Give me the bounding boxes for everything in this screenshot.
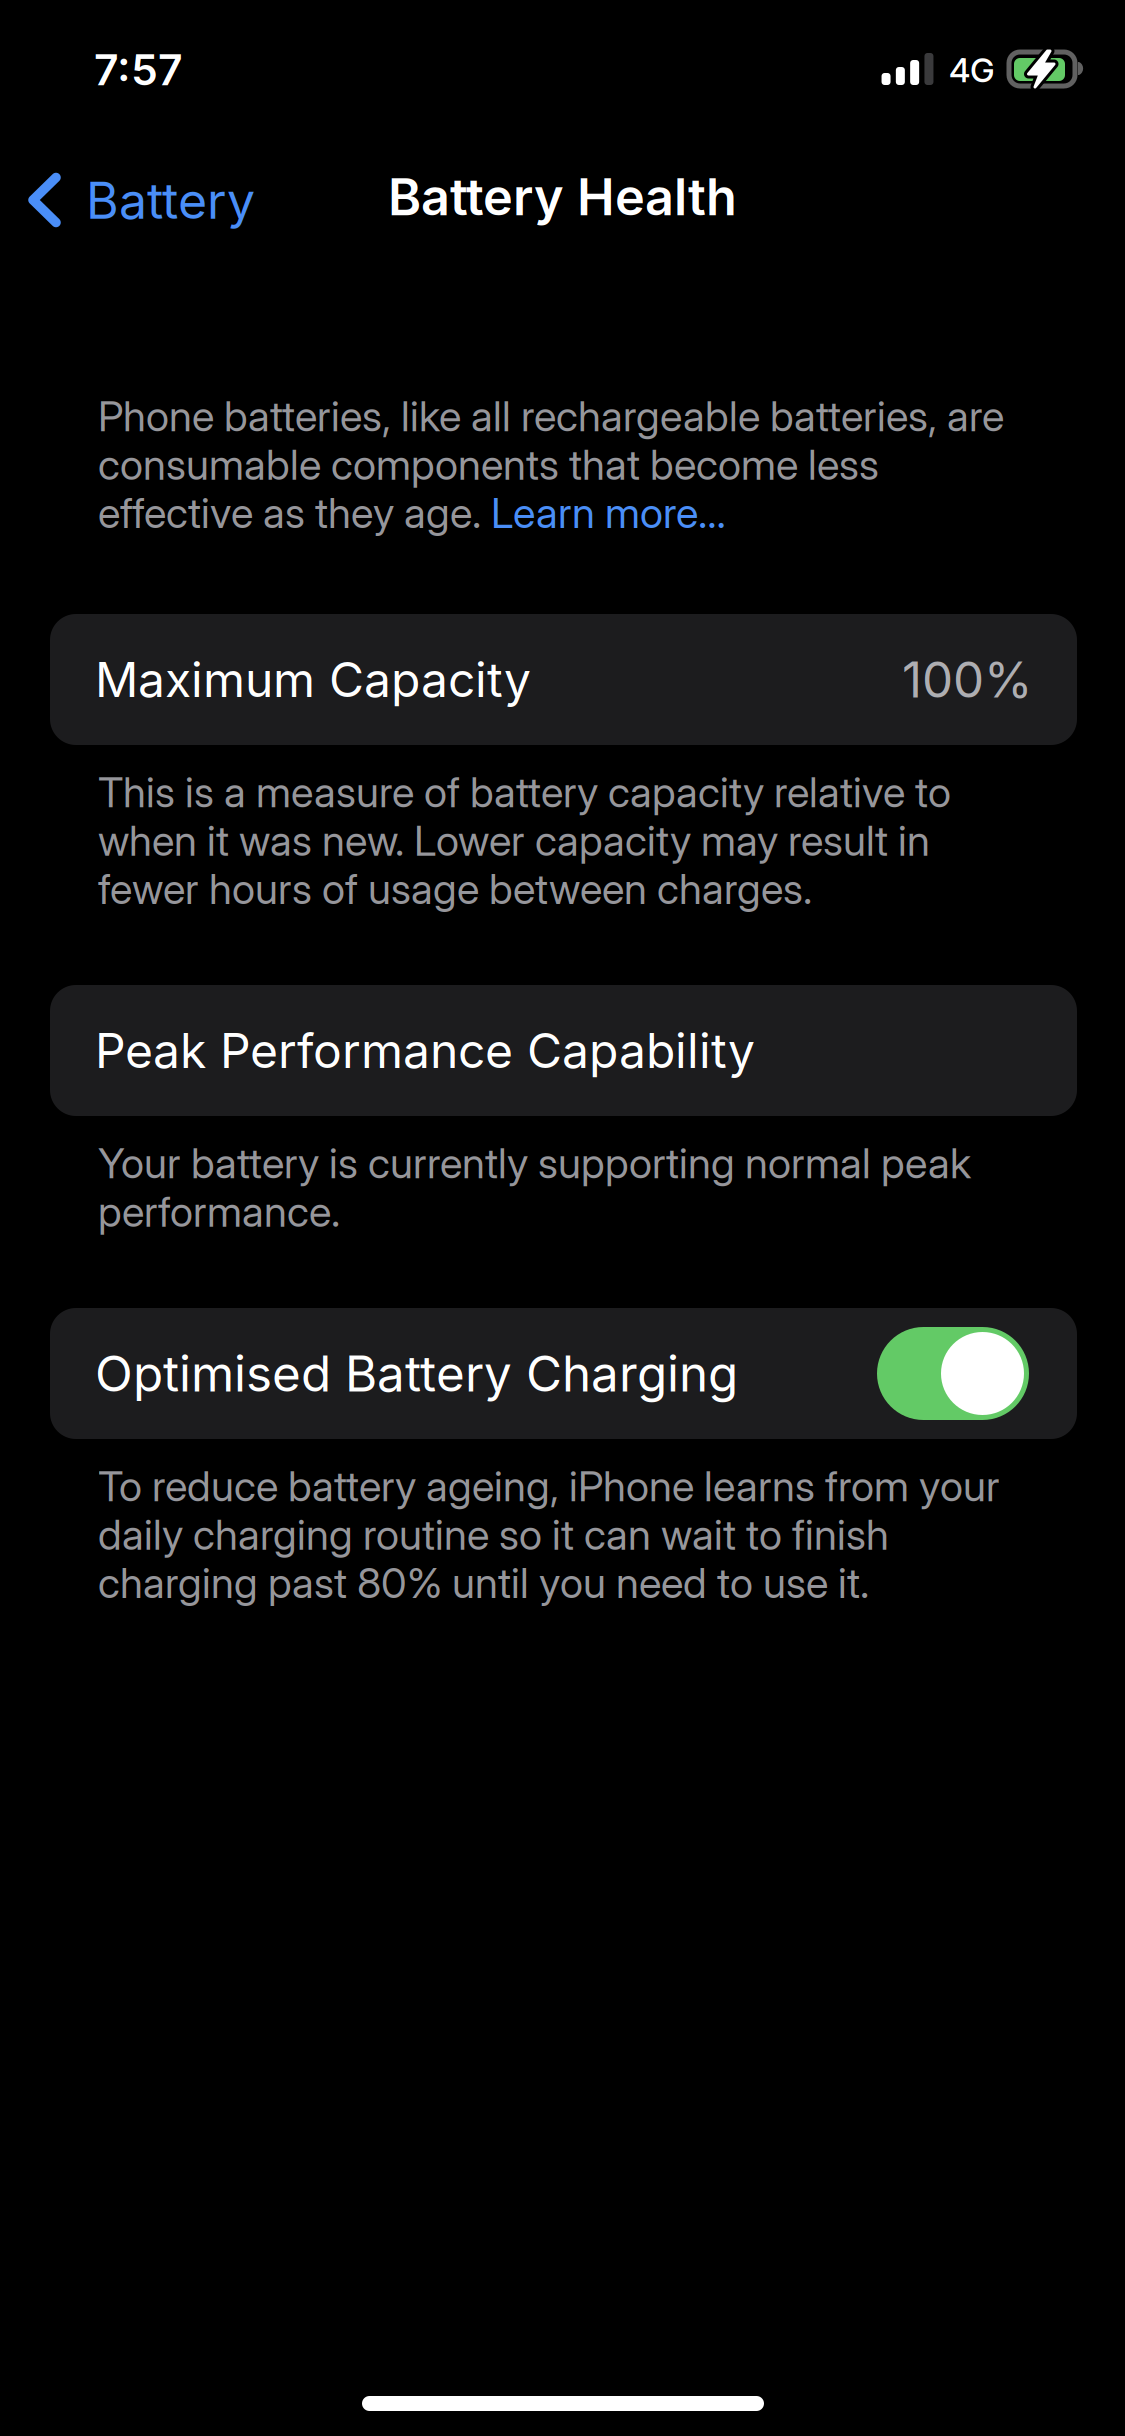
- staticText: Peak Performance Capability: [95, 1021, 755, 1080]
- staticText: 4G: [949, 50, 995, 90]
- button[interactable]: Peak Performance Capability: [50, 985, 1077, 1116]
- staticText: 7:57: [94, 44, 183, 96]
- staticText: Battery: [86, 170, 255, 231]
- staticText: 100%: [902, 650, 1032, 709]
- staticText: Battery Health: [388, 166, 737, 227]
- staticText: Your battery is currently supporting nor…: [98, 1138, 971, 1237]
- staticText: This is a measure of battery capacity re…: [98, 767, 951, 914]
- staticText: Maximum Capacity: [95, 650, 531, 709]
- staticText: Optimised Battery Charging: [95, 1344, 738, 1403]
- button[interactable]: Maximum Capacity: [50, 614, 1077, 745]
- staticText: Phone batteries, like all rechargeable b…: [98, 391, 1004, 538]
- staticText: To reduce battery ageing, iPhone learns …: [98, 1461, 1000, 1608]
- button[interactable]: Optimised Battery Charging, on: [877, 1327, 1029, 1420]
- button[interactable]: Learn more: [402, 494, 722, 540]
- button[interactable]: Optimised Battery Charging: [50, 1308, 1077, 1439]
- button[interactable]: Battery: [0, 148, 340, 252]
